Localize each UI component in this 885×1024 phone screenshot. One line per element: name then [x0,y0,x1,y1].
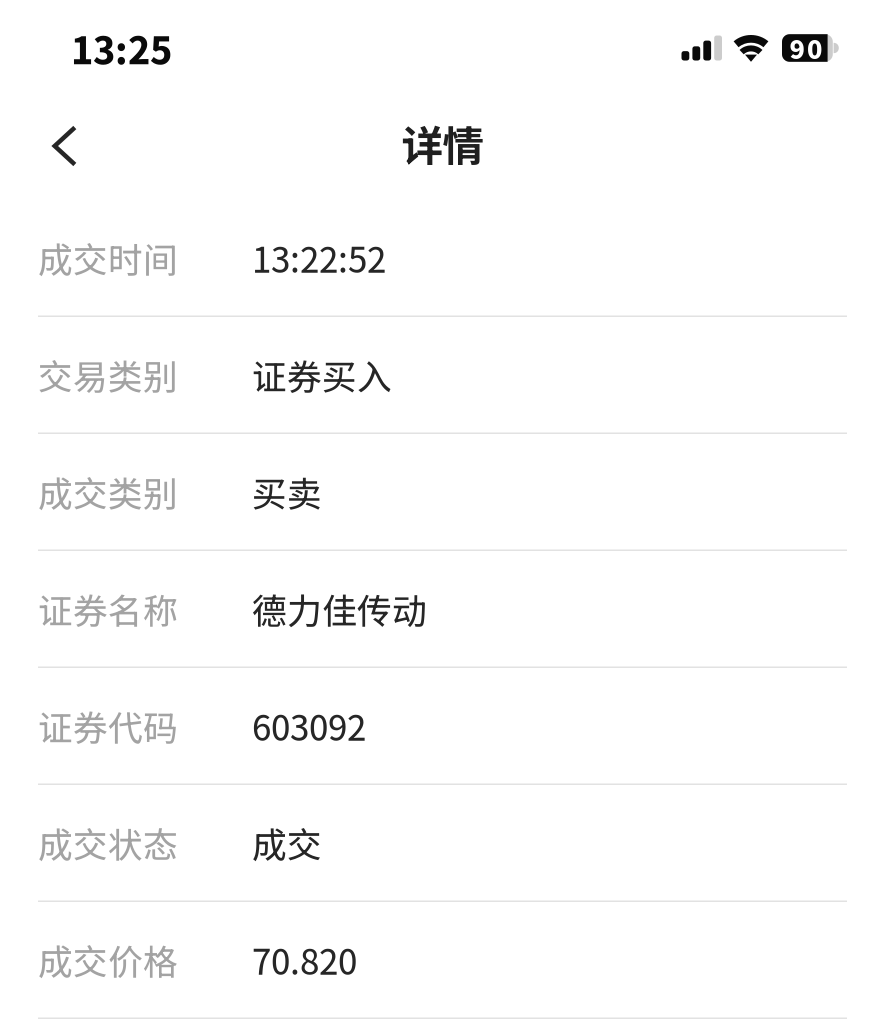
staticText: 证券买入 [252,350,392,400]
staticText: 详情 [401,113,483,173]
staticText: 成交 [252,818,322,868]
staticText: 交易类别 [38,350,178,400]
staticText: 证券代码 [38,701,178,751]
staticText: 13:25 [71,21,172,75]
staticText: 成交时间 [38,233,178,283]
staticText: 成交状态 [38,818,178,868]
staticText: 90 [789,30,822,66]
staticText: 买卖 [252,467,322,517]
staticText: 成交类别 [38,467,178,517]
button[interactable]: Back [32,112,98,174]
staticText: 证券名称 [38,584,178,634]
staticText: 成交价格 [38,935,178,985]
staticText: 13:22:52 [252,233,386,283]
staticText: 德力佳传动 [252,584,427,634]
staticText: 70.820 [252,935,357,985]
staticText: 603092 [252,701,366,751]
